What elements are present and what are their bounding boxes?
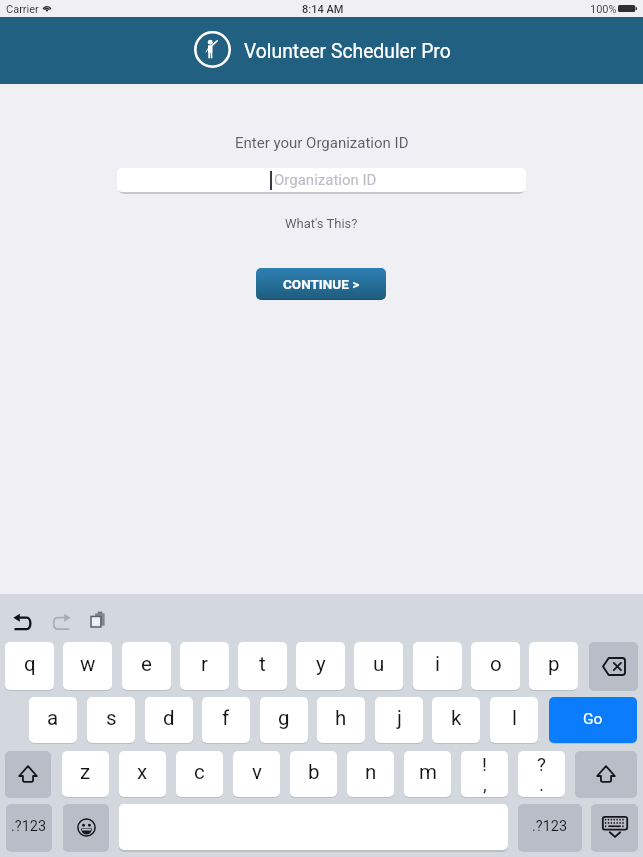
staticText: s [106, 706, 117, 730]
button[interactable]: q [5, 642, 54, 690]
staticText: 100% [590, 3, 617, 16]
button[interactable]: y [296, 642, 345, 690]
staticText: d [163, 706, 175, 730]
button[interactable]: t [238, 642, 287, 690]
button[interactable]: Redo [52, 612, 71, 631]
staticText: b [308, 760, 320, 784]
button[interactable]: Backspace [589, 642, 638, 690]
button[interactable]: .?123 [6, 804, 52, 850]
staticText: j [397, 706, 402, 730]
button[interactable]: w [63, 642, 112, 690]
staticText: h [335, 706, 347, 730]
button[interactable]: Organization ID field [117, 168, 526, 192]
button[interactable]: Go [549, 697, 637, 743]
staticText: g [278, 706, 290, 730]
button[interactable]: k [432, 697, 480, 743]
staticText: .?123 [532, 818, 568, 835]
button[interactable]: m [404, 751, 451, 797]
staticText: r [201, 652, 208, 676]
staticText: p [548, 652, 560, 676]
button[interactable]: o [471, 642, 520, 690]
button[interactable]: j [375, 697, 423, 743]
button[interactable]: g [260, 697, 308, 743]
staticText: u [373, 652, 385, 676]
staticText: Organization ID [274, 171, 377, 189]
button[interactable]: b [290, 751, 337, 797]
staticText: l [512, 706, 517, 730]
button[interactable]: CONTINUE > [256, 268, 386, 300]
button[interactable]: l [490, 697, 538, 743]
staticText: , [483, 773, 487, 795]
staticText: Carrier [6, 3, 39, 16]
button[interactable]: Shift [5, 751, 51, 797]
staticText: y [316, 652, 326, 676]
button[interactable]: n [347, 751, 394, 797]
button[interactable]: Emoji [63, 804, 109, 850]
staticText: .?123 [11, 818, 47, 835]
button[interactable]: What's This? [279, 213, 364, 234]
staticText: Go [583, 710, 603, 728]
button[interactable]: z [62, 751, 109, 797]
button[interactable]: h [317, 697, 365, 743]
staticText: CONTINUE > [283, 276, 360, 292]
button[interactable]: a [29, 697, 77, 743]
staticText: . [539, 773, 545, 795]
staticText: i [435, 652, 440, 676]
staticText: f [222, 706, 230, 730]
staticText: 8:14 AM [302, 3, 344, 16]
staticText: Enter your Organization ID [235, 134, 409, 152]
staticText: v [252, 760, 262, 784]
staticText: z [80, 760, 91, 784]
button[interactable]: .?123 [518, 804, 582, 850]
staticText: x [137, 760, 148, 784]
staticText: k [451, 706, 462, 730]
button[interactable]: u [354, 642, 403, 690]
staticText: a [47, 706, 59, 730]
button[interactable]: s [87, 697, 135, 743]
staticText: q [24, 652, 36, 676]
staticText: n [365, 760, 377, 784]
staticText: What's This? [285, 216, 358, 231]
button[interactable]: ? [518, 751, 565, 797]
staticText: m [419, 760, 437, 784]
button[interactable]: Hide keyboard [591, 804, 638, 850]
staticText: Volunteer Scheduler Pro [244, 40, 451, 63]
staticText: t [259, 652, 266, 676]
button[interactable]: r [180, 642, 229, 690]
staticText: ? [537, 753, 546, 775]
button[interactable]: c [176, 751, 223, 797]
button[interactable]: i [413, 642, 462, 690]
button[interactable]: d [145, 697, 193, 743]
button[interactable]: p [529, 642, 578, 690]
staticText: ! [482, 753, 487, 775]
button[interactable]: ! [461, 751, 508, 797]
staticText: o [490, 652, 502, 676]
button[interactable]: v [233, 751, 280, 797]
button[interactable]: Shift [575, 751, 637, 797]
button[interactable]: f [202, 697, 250, 743]
staticText: e [141, 652, 152, 676]
button[interactable]: x [119, 751, 166, 797]
button[interactable]: Undo [13, 612, 32, 631]
button[interactable]: Paste [90, 611, 107, 628]
staticText: c [194, 760, 205, 784]
button[interactable]: e [122, 642, 171, 690]
staticText: w [80, 652, 96, 676]
